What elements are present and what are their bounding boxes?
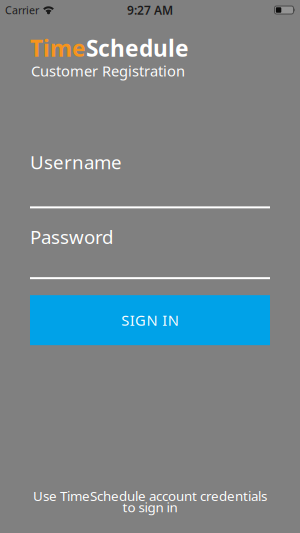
staticText: Carrier bbox=[5, 3, 39, 17]
staticText: 9:27 AM bbox=[127, 2, 173, 18]
staticText: Username bbox=[30, 150, 122, 174]
staticText: Password bbox=[30, 224, 113, 249]
staticText: SIGN IN bbox=[121, 310, 179, 330]
staticText: Customer Registration bbox=[31, 61, 185, 81]
staticText: Schedule bbox=[86, 33, 189, 63]
staticText: to sign in bbox=[122, 498, 177, 516]
staticText: Time bbox=[30, 33, 86, 63]
button[interactable]: SIGN IN bbox=[30, 295, 270, 345]
staticText: Use TimeSchedule account credentials bbox=[33, 487, 267, 505]
secureTextField[interactable] bbox=[30, 248, 270, 278]
